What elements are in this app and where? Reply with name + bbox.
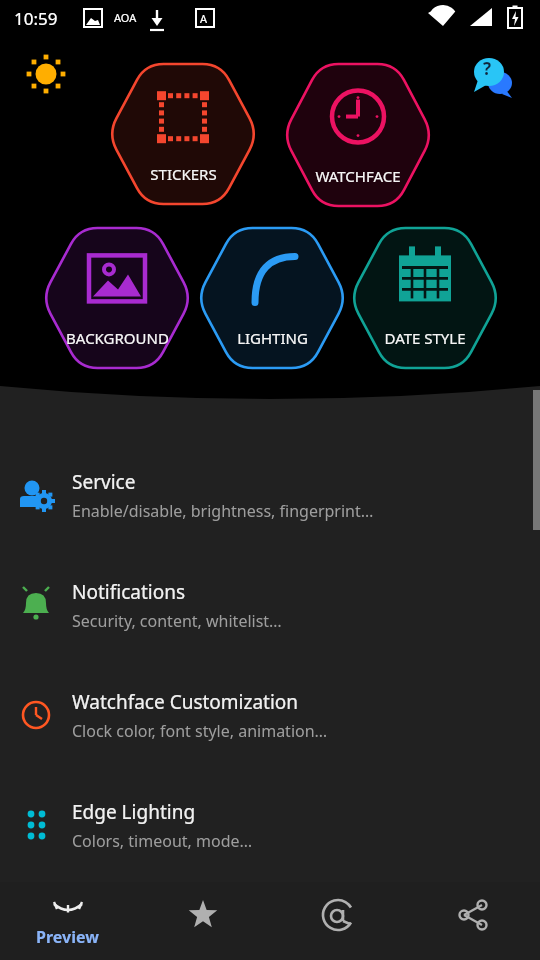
button[interactable]: Rate xyxy=(135,882,270,960)
button[interactable]: Share xyxy=(405,882,540,960)
button[interactable]: Help xyxy=(468,52,516,100)
button[interactable]: BACKGROUND xyxy=(42,228,192,368)
button[interactable]: Service xyxy=(0,440,540,550)
staticText: 10:59 xyxy=(14,7,58,30)
staticText: Edge Lighting xyxy=(72,799,196,825)
staticText: Preview xyxy=(36,926,99,948)
button[interactable]: Edge Lighting xyxy=(0,770,540,880)
staticText: Enable/disable, brightness, fingerprint… xyxy=(72,500,374,522)
staticText: Service xyxy=(72,469,136,495)
staticText: Security, content, whitelist… xyxy=(72,610,282,632)
staticText: ? xyxy=(483,57,492,80)
staticText: Colors, timeout, mode… xyxy=(72,830,253,852)
staticText: LIGHTING xyxy=(237,328,308,348)
staticText: STICKERS xyxy=(150,164,217,184)
staticText: DATE STYLE xyxy=(384,328,466,348)
staticText: Watchface Customization xyxy=(72,689,299,715)
button[interactable]: Brightness xyxy=(24,52,68,96)
staticText: Notifications xyxy=(72,579,186,605)
staticText: BACKGROUND xyxy=(66,328,169,348)
button[interactable]: STICKERS xyxy=(108,64,258,204)
staticText: A xyxy=(200,11,208,26)
staticText: Clock color, font style, animation… xyxy=(72,720,328,742)
staticText: AOA xyxy=(114,10,137,25)
button[interactable]: LIGHTING xyxy=(197,228,347,368)
button[interactable]: Preview xyxy=(0,882,135,960)
button[interactable]: Watchface Customization xyxy=(0,660,540,770)
staticText: WATCHFACE xyxy=(315,166,401,186)
button[interactable]: DATE STYLE xyxy=(350,228,500,368)
button[interactable]: Contact xyxy=(270,882,405,960)
button[interactable]: WATCHFACE xyxy=(283,64,433,206)
button[interactable]: Notifications xyxy=(0,550,540,660)
